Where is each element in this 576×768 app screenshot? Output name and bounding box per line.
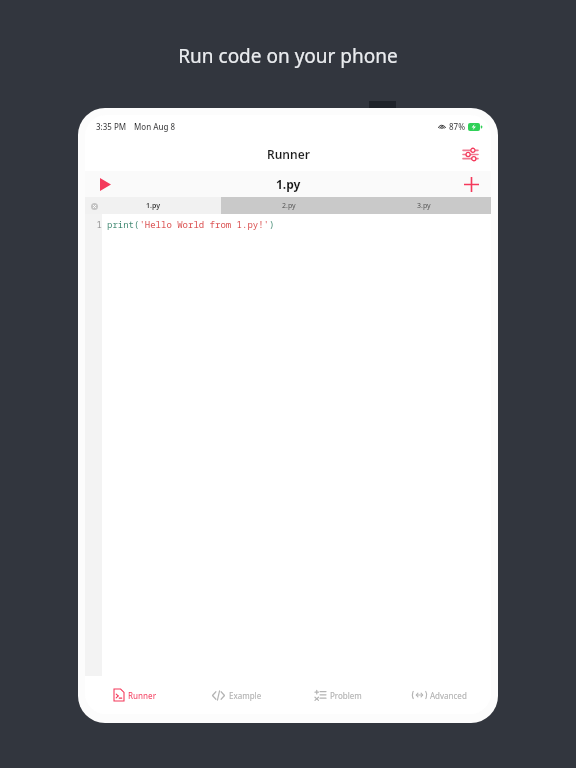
- staticText: Mon Aug 8: [134, 121, 176, 132]
- staticText: Advanced: [430, 690, 467, 701]
- staticText: 87%: [449, 121, 465, 132]
- staticText: 1.py: [276, 176, 301, 192]
- button[interactable]: Run: [93, 172, 117, 196]
- staticText: Example: [229, 690, 262, 701]
- button[interactable]: 1.py: [85, 197, 221, 214]
- staticText: 3.py: [417, 201, 431, 211]
- button[interactable]: Add file: [459, 172, 483, 196]
- staticText: 2.py: [282, 201, 296, 211]
- button[interactable]: Advanced: [389, 676, 491, 714]
- button[interactable]: Runner: [85, 676, 186, 714]
- button[interactable]: Close 1.py: [88, 200, 100, 212]
- button[interactable]: Example: [186, 676, 287, 714]
- staticText: Run code on your phone: [0, 43, 576, 69]
- staticText: Problem: [330, 690, 362, 701]
- staticText: 1.py: [146, 201, 161, 211]
- staticText: print('Hello World from 1.py!'): [107, 218, 275, 230]
- staticText: 3:35 PM: [96, 121, 127, 132]
- staticText: Runner: [128, 690, 157, 701]
- button[interactable]: 3.py: [356, 197, 491, 214]
- staticText: Runner: [267, 146, 310, 162]
- button[interactable]: Settings: [457, 141, 483, 167]
- staticText: 1: [91, 218, 102, 230]
- button[interactable]: 2.py: [221, 197, 356, 214]
- button[interactable]: Problem: [287, 676, 389, 714]
